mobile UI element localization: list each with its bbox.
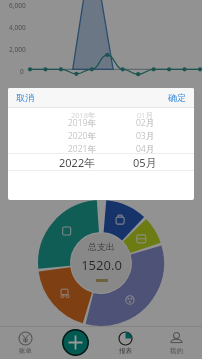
staticText: 2,000 (9, 45, 26, 54)
button[interactable]: 2018年 (8, 108, 194, 121)
staticText: 03月 (136, 130, 155, 142)
button[interactable]: Add record (62, 329, 89, 356)
button[interactable]: 2020年 (8, 129, 194, 142)
button[interactable]: 2022年 (8, 154, 194, 170)
button[interactable]: 确定 (160, 90, 194, 105)
staticText: 05月 (133, 155, 157, 170)
staticText: 取消 (16, 92, 34, 103)
button[interactable]: 我的 (151, 328, 202, 358)
staticText: 2020年 (68, 130, 96, 142)
staticText: 2021年 (68, 143, 96, 155)
staticText: 账单 (19, 347, 32, 355)
button[interactable]: 报表 (100, 328, 151, 358)
staticText: 2022年 (59, 155, 96, 170)
staticText: 2018年 (71, 110, 96, 120)
staticText: 2019年 (68, 117, 96, 129)
button[interactable]: 账单 (0, 328, 50, 358)
staticText: 04月 (136, 143, 155, 155)
staticText: 6,000 (9, 1, 26, 10)
staticText: 0 (20, 67, 24, 76)
staticText: 总支出 (88, 241, 115, 252)
staticText: 报表 (119, 347, 132, 355)
button[interactable]: 2019年 (8, 116, 194, 129)
staticText: 1520.0 (81, 256, 122, 274)
staticText: 我的 (170, 347, 183, 355)
button[interactable]: 2021年 (8, 142, 194, 155)
staticText: 01月 (137, 110, 154, 120)
staticText: 确定 (168, 92, 186, 103)
button[interactable]: 取消 (8, 90, 42, 105)
staticText: 02月 (136, 117, 155, 129)
staticText: 4,000 (9, 23, 26, 32)
